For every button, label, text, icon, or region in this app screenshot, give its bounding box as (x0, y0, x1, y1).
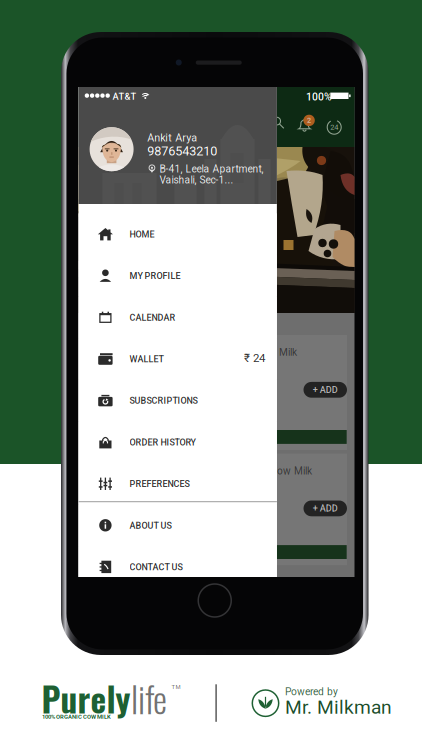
staticText: ₹ 54 / 500 ml (156, 359, 206, 369)
button[interactable]: MY PROFILE (78, 255, 277, 296)
button[interactable]: CONTACT US (78, 546, 277, 588)
button[interactable]: Search (268, 112, 290, 134)
staticText: CALENDAR (130, 312, 176, 323)
button[interactable]: + ADD (303, 500, 347, 516)
staticText: 100% ORGANIC COW MILK (42, 713, 111, 720)
button[interactable]: CALENDAR (78, 296, 277, 338)
staticText: + ADD (313, 384, 338, 395)
staticText: HOME (130, 229, 155, 240)
button[interactable]: WALLET (78, 338, 277, 380)
staticText: ₹ 46 / 500 ml (156, 478, 206, 488)
staticText: MY PROFILE (130, 271, 181, 281)
staticText: 9876543210 (147, 144, 217, 158)
staticText: Purely (41, 674, 130, 723)
staticText: Purely Life Full Cream Cow Milk (156, 346, 297, 358)
staticText: WALLET (130, 354, 164, 364)
button[interactable]: Subscribe Again (84, 430, 347, 444)
staticText: Purely Life Double Toned Cow Milk (156, 465, 312, 477)
button[interactable]: Request Sample (84, 545, 347, 559)
staticText: life (131, 672, 167, 724)
staticText: PREFERENCES (130, 479, 190, 489)
button[interactable]: Notifications (293, 114, 315, 136)
staticText: 24 (330, 123, 338, 131)
staticText: + ADD (313, 503, 338, 514)
staticText: ORDER HISTORY (130, 437, 196, 448)
staticText: 100% (306, 91, 332, 103)
staticText: Powered by (285, 686, 338, 698)
staticText: B-41, Leela Apartment, (160, 163, 264, 175)
button[interactable]: HOME (78, 213, 277, 255)
staticText: ABOUT US (130, 520, 172, 531)
button[interactable]: PREFERENCES (78, 463, 277, 504)
button[interactable]: SUBSCRIPTIONS (78, 380, 277, 421)
button[interactable]: ABOUT US (78, 504, 277, 546)
staticText: TM (171, 683, 180, 690)
staticText: Subscribe Again (185, 432, 245, 442)
staticText: SUBSCRIPTIONS (130, 395, 198, 406)
staticText: Ankit Arya (147, 131, 197, 144)
button[interactable]: 24 hour delivery (323, 116, 345, 138)
staticText: CONTACT US (130, 562, 183, 572)
button[interactable]: + ADD (303, 382, 347, 398)
staticText: 2 (307, 116, 311, 125)
staticText: ₹ 24 (244, 351, 265, 365)
button[interactable]: ORDER HISTORY (78, 421, 277, 463)
staticText: Mr. Milkman (285, 696, 392, 718)
staticText: Vaishali, Sec-1... (160, 174, 234, 186)
staticText: AT&T (112, 91, 136, 102)
